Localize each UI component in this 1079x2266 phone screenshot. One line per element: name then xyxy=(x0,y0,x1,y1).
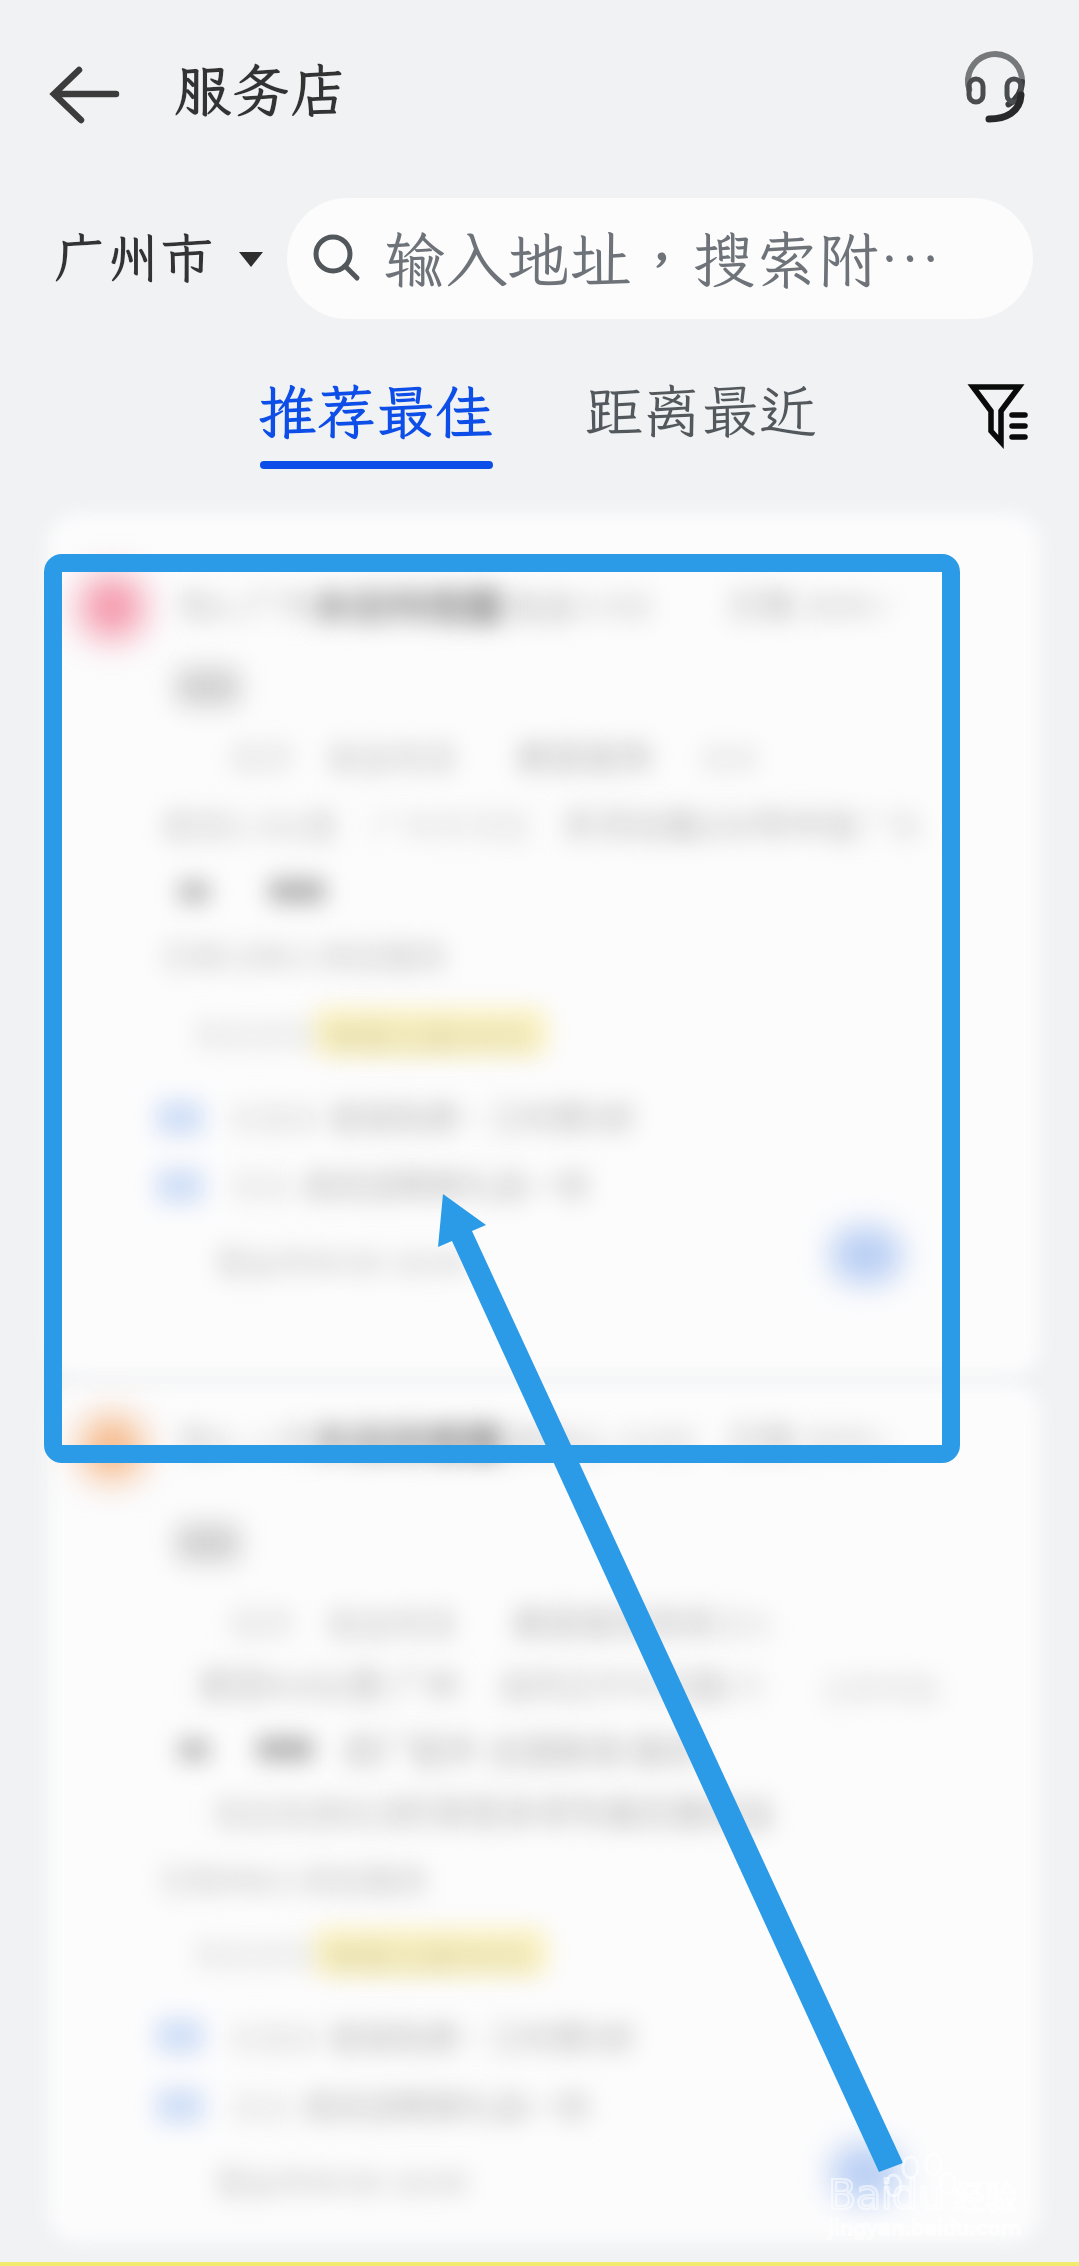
button[interactable]: 广州市 xyxy=(54,222,265,292)
staticText: 推荐最佳 xyxy=(258,372,495,450)
staticText: 输入地址，搜索附… xyxy=(383,218,942,300)
button[interactable]: 推荐最佳 xyxy=(258,372,495,469)
staticText: 广州市 xyxy=(54,222,213,292)
button[interactable]: Filter xyxy=(962,375,1042,455)
button[interactable]: Back xyxy=(38,46,134,142)
button[interactable]: 距离最近 xyxy=(585,372,818,448)
staticText: 距离最近 xyxy=(585,372,818,448)
button[interactable]: 输入地址，搜索附… xyxy=(287,198,1033,319)
button[interactable]: Customer service xyxy=(949,35,1041,127)
staticText: 服务店 xyxy=(174,51,349,127)
